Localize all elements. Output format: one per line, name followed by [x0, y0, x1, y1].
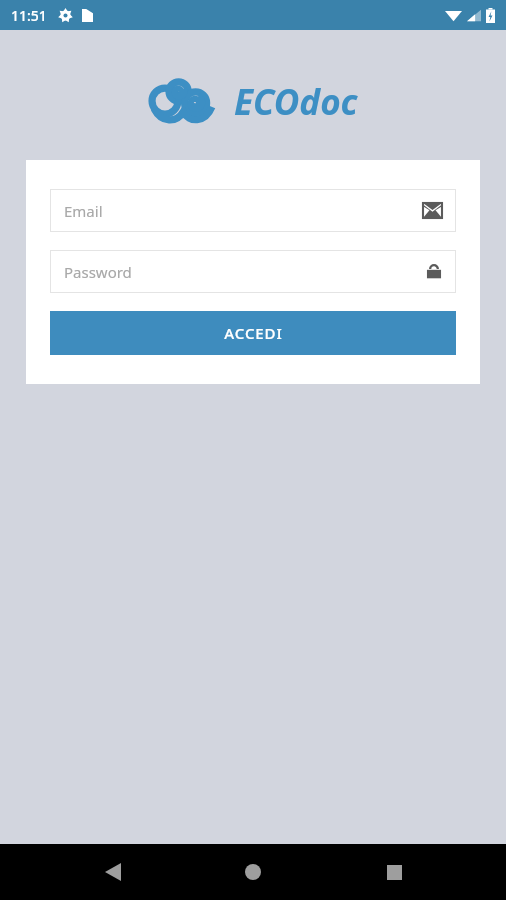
staticText: Email — [64, 201, 423, 221]
staticText: 11:51 — [11, 6, 47, 25]
staticText: ECOdoc — [234, 78, 358, 126]
button[interactable]: ACCEDI — [50, 311, 456, 355]
button[interactable]: Home — [225, 844, 281, 900]
staticText: ACCEDI — [224, 323, 283, 343]
staticText: Password — [64, 262, 426, 282]
other: Password — [426, 263, 442, 280]
button[interactable]: Recents — [366, 844, 422, 900]
button[interactable]: Back — [85, 844, 141, 900]
button[interactable]: Password — [50, 250, 456, 293]
button[interactable]: Email — [50, 189, 456, 232]
other: Email — [423, 203, 442, 218]
